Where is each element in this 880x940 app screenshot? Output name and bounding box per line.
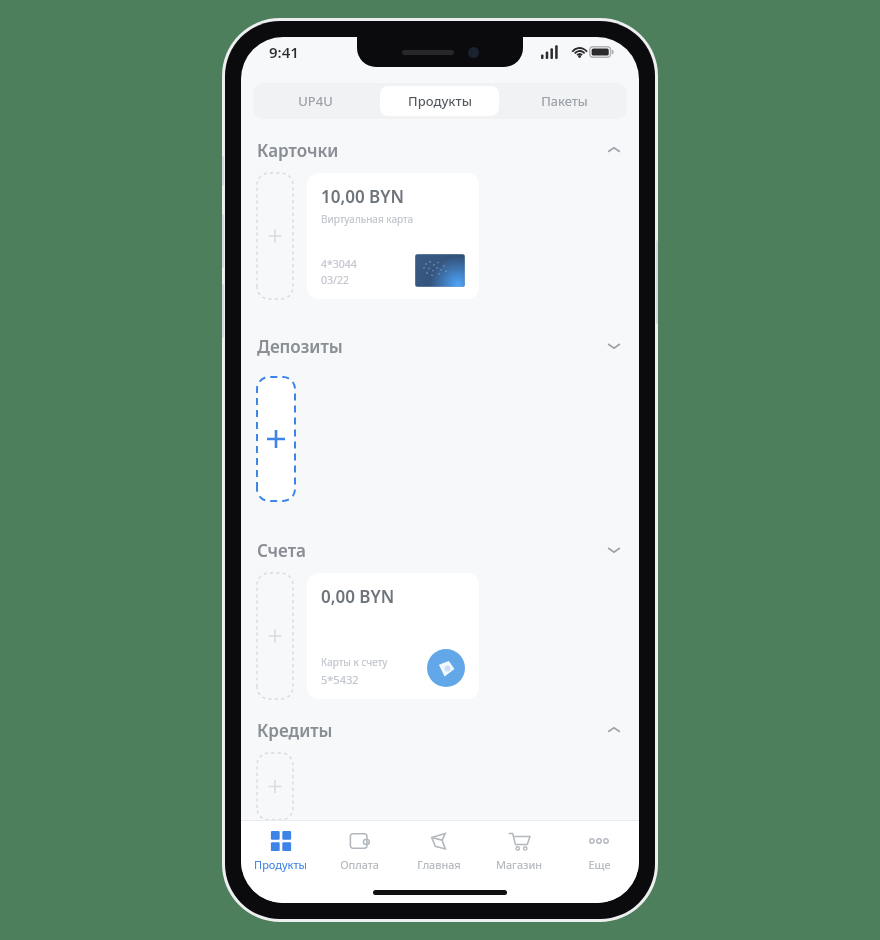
button[interactable]: UP4U — [256, 86, 374, 116]
button[interactable]: Add — [257, 173, 293, 299]
staticText: Продукты — [408, 92, 472, 110]
staticText: Продукты — [254, 857, 307, 872]
button[interactable]: Депозиты — [241, 329, 639, 363]
other: Expand — [607, 339, 621, 353]
staticText: 9:41 — [269, 42, 299, 62]
staticText: Карты к счету — [321, 655, 388, 669]
staticText: Еще — [588, 857, 611, 872]
button[interactable]: Кредиты — [241, 713, 639, 747]
staticText: UP4U — [298, 92, 333, 110]
staticText: 4*3044 — [321, 257, 357, 271]
staticText: Виртуальная карта — [321, 212, 414, 226]
staticText: 0,00 BYN — [321, 585, 395, 608]
button[interactable]: Продукты — [241, 821, 320, 881]
button[interactable]: Главная — [399, 821, 479, 881]
button[interactable]: Еще — [559, 821, 639, 881]
staticText: Счета — [257, 539, 306, 562]
button[interactable]: Пакеты — [505, 86, 624, 116]
button[interactable]: Продукты — [380, 86, 499, 116]
other: Collapse — [607, 723, 621, 737]
staticText: 03/22 — [321, 273, 349, 287]
button[interactable]: Add — [257, 377, 295, 501]
staticText: Магазин — [496, 857, 542, 872]
other: Collapse — [607, 143, 621, 157]
button[interactable]: Add — [257, 753, 293, 820]
staticText: Кредиты — [257, 719, 333, 742]
button[interactable]: Add — [257, 573, 293, 699]
staticText: Оплата — [340, 857, 379, 872]
button[interactable]: Счета — [241, 533, 639, 567]
staticText: Карточки — [257, 139, 339, 162]
staticText: Депозиты — [257, 335, 343, 358]
other: Expand — [607, 543, 621, 557]
staticText: Пакеты — [541, 92, 588, 110]
staticText: 5*5432 — [321, 672, 359, 687]
button[interactable]: 10,00 BYN — [307, 173, 479, 299]
button[interactable]: 0,00 BYN — [307, 573, 479, 699]
button[interactable]: Оплата — [320, 821, 399, 881]
button[interactable]: Магазин — [479, 821, 559, 881]
staticText: Главная — [417, 857, 461, 872]
button[interactable]: Карточки — [241, 133, 639, 167]
staticText: 10,00 BYN — [321, 185, 404, 208]
